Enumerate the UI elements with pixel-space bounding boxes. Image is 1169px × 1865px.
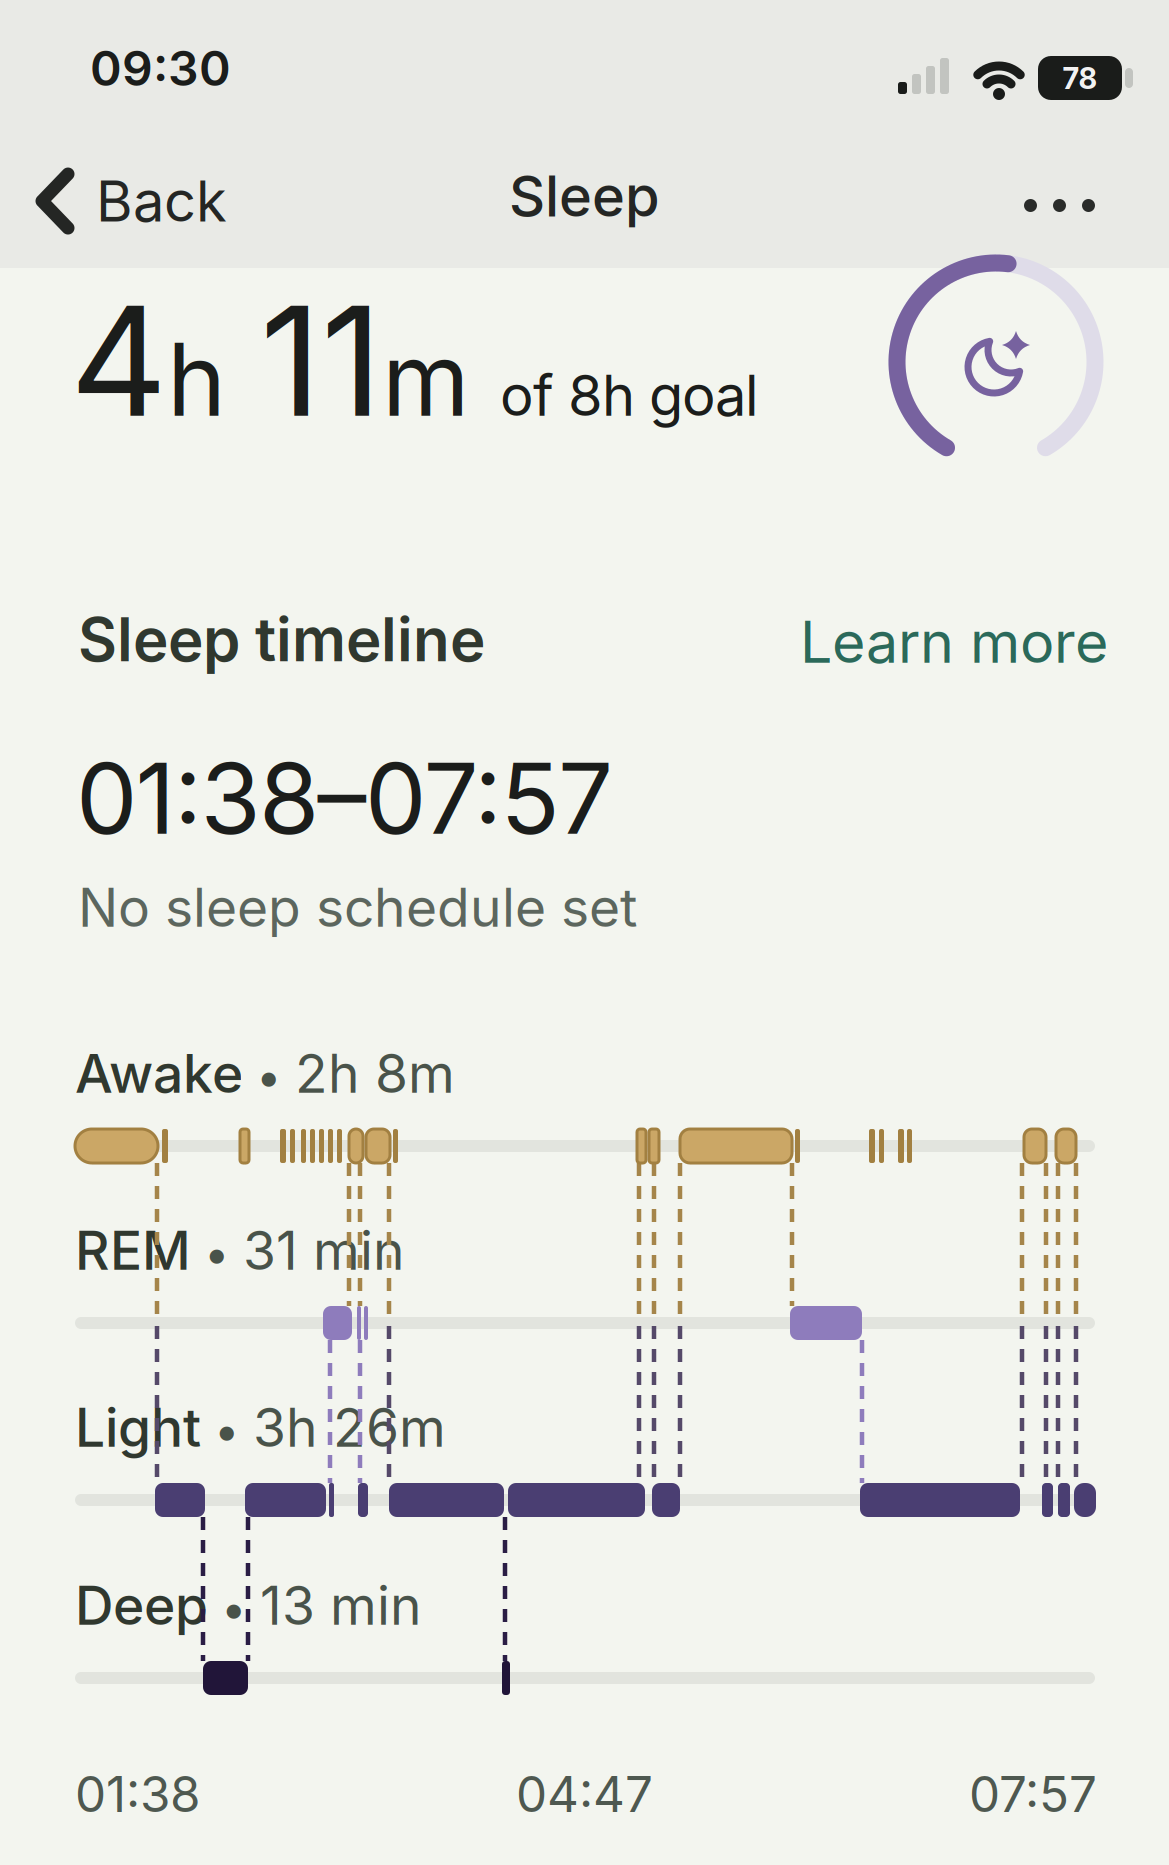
staticText: 01:38–07:57 (76, 741, 613, 856)
staticText: Sleep (509, 163, 660, 229)
staticText: 4 (70, 272, 167, 450)
staticText: 07:57 (969, 1765, 1097, 1823)
staticText: 31 min (243, 1219, 405, 1282)
staticText: h (167, 320, 226, 438)
staticText: 13 min (260, 1574, 422, 1637)
staticText: • (208, 1582, 260, 1635)
staticText: No sleep schedule set (78, 876, 637, 939)
staticText: 01:38 (75, 1765, 201, 1823)
staticText: 09:30 (90, 40, 231, 97)
staticText: 2h 8m (295, 1042, 455, 1105)
staticText: • (191, 1227, 243, 1280)
staticText: m (382, 320, 470, 438)
staticText: 3h 26m (253, 1396, 446, 1459)
button[interactable]: Back (34, 168, 227, 234)
staticText: of 8h goal (500, 362, 759, 428)
staticText: 11 (260, 272, 382, 450)
staticText: 04:47 (516, 1765, 653, 1823)
staticText: Learn more (800, 608, 1108, 676)
staticText: Deep (75, 1574, 208, 1637)
staticText: • (201, 1404, 253, 1457)
staticText: Sleep timeline (78, 604, 485, 675)
staticText: REM (75, 1219, 191, 1282)
staticText: Light (75, 1396, 201, 1459)
staticText: • (243, 1050, 295, 1103)
staticText: Awake (75, 1042, 243, 1105)
button[interactable] (1024, 199, 1095, 212)
staticText: Back (96, 168, 227, 234)
staticText: 78 (1062, 61, 1097, 96)
button[interactable]: Learn more (0, 608, 1108, 676)
